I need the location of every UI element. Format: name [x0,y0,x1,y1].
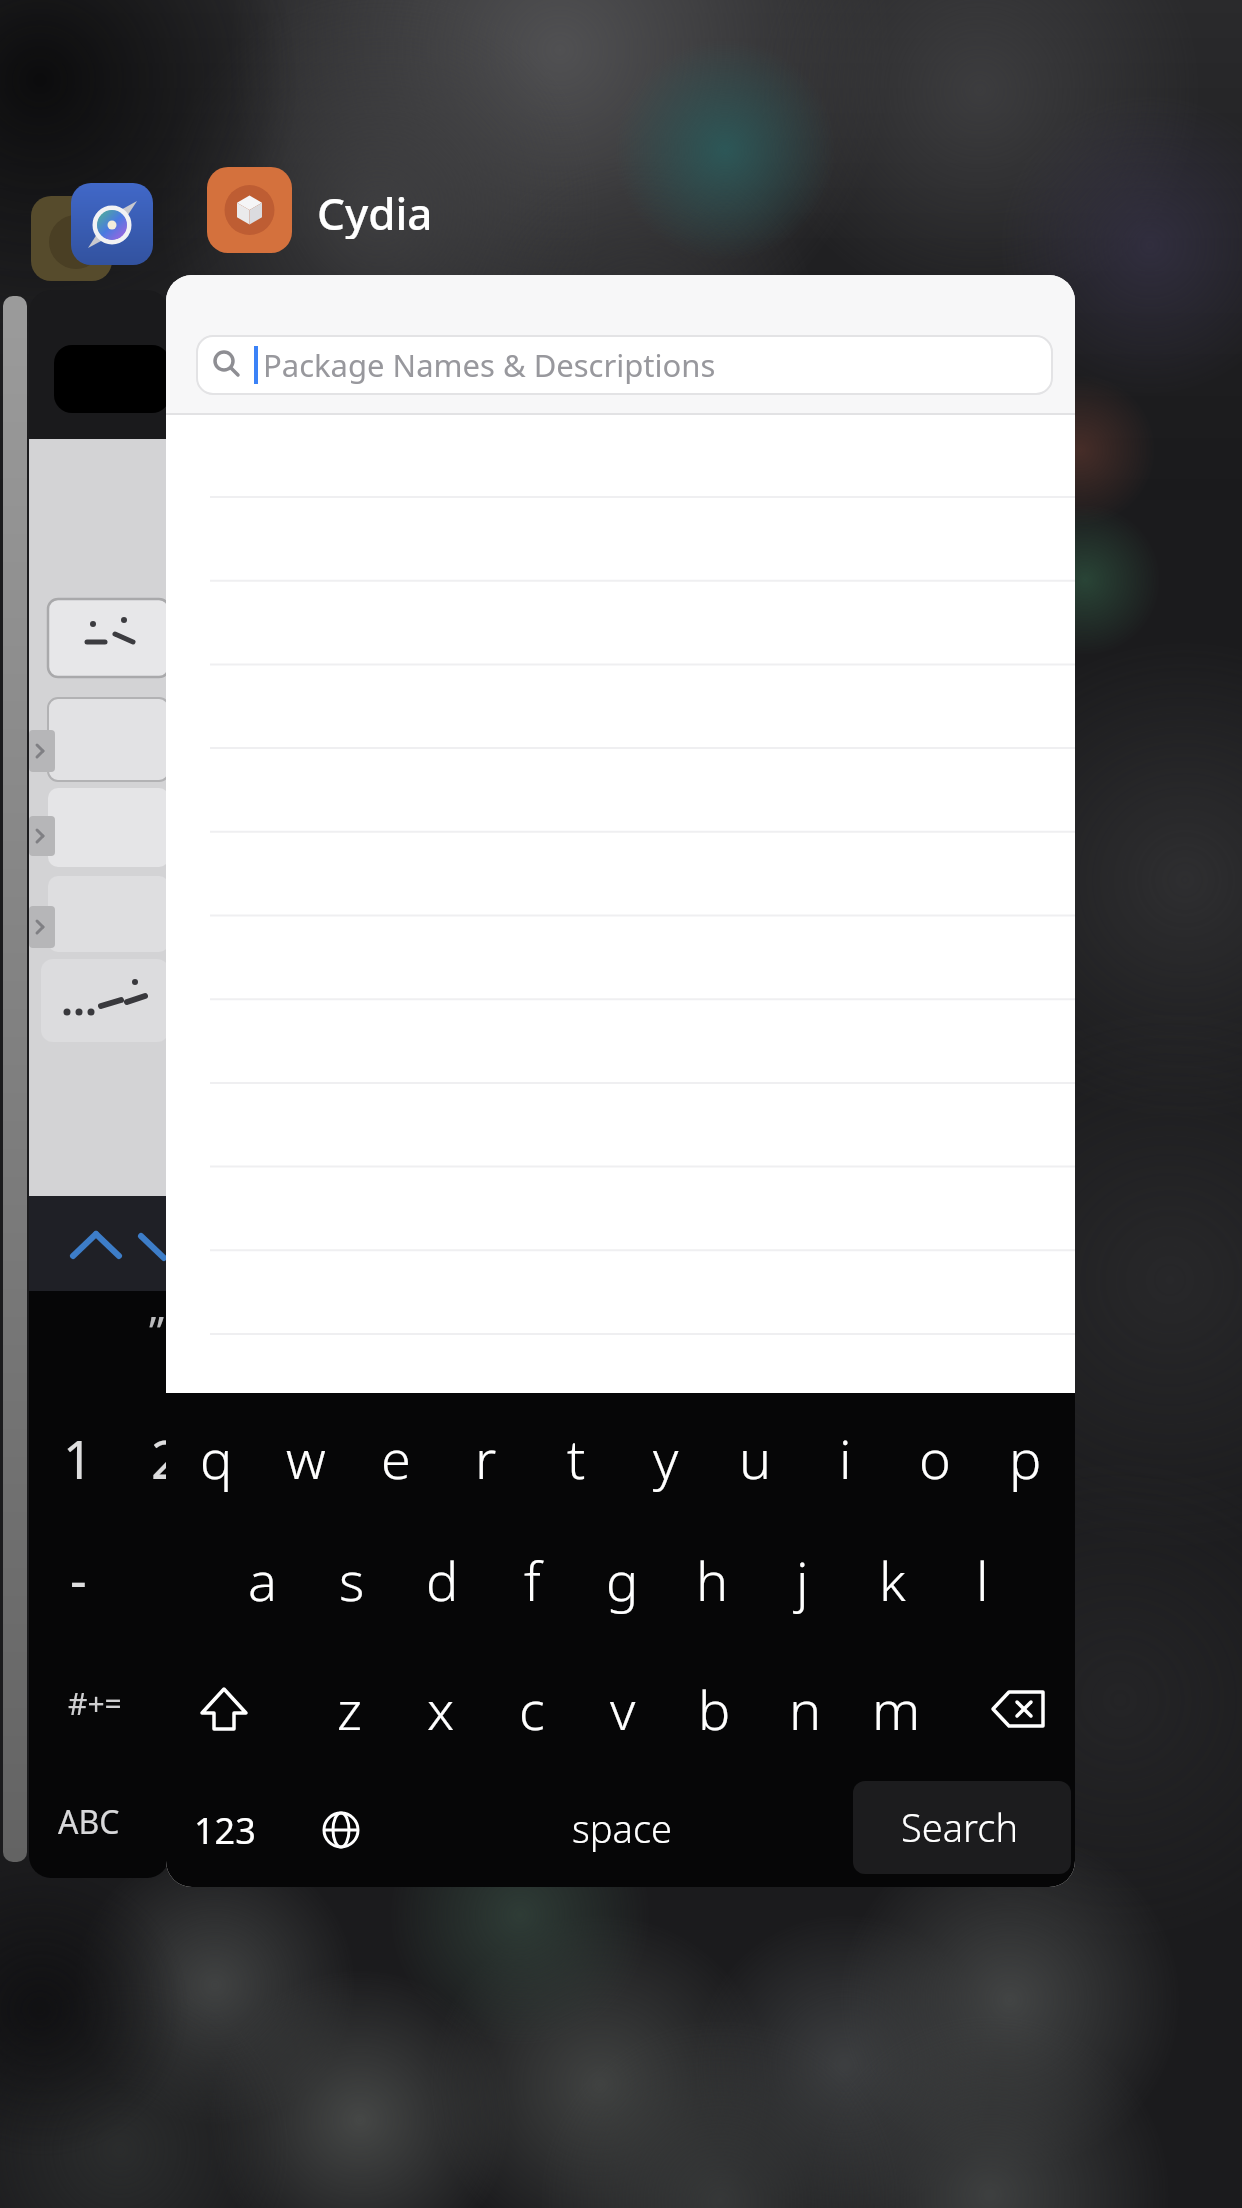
button[interactable]: d [372,1530,512,1630]
staticText: g [606,1543,639,1617]
button[interactable]: w [236,1408,376,1508]
staticText: x [427,1672,455,1746]
button[interactable]: #+= [25,1653,165,1753]
button[interactable]: m [826,1659,966,1759]
button[interactable]: t [506,1408,646,1508]
staticText: o [919,1421,951,1495]
button[interactable]: u [685,1408,825,1508]
staticText: a [248,1543,277,1617]
staticText: 123 [194,1806,256,1855]
staticText: ” [149,1302,165,1359]
button[interactable]: j [732,1530,872,1630]
staticText: Package Names & Descriptions [263,344,716,386]
staticText: p [1009,1421,1042,1495]
staticText: Cydia [317,183,433,239]
button[interactable]: 2 [151,1408,169,1508]
button[interactable]: f [462,1530,602,1630]
staticText: l [976,1543,989,1617]
button[interactable]: 123 [155,1780,295,1880]
button[interactable] [71,183,153,265]
staticText: e [381,1421,411,1495]
staticText: k [879,1543,906,1617]
staticText: u [739,1421,772,1495]
button[interactable]: Search [890,1777,1030,1877]
button[interactable] [197,336,1052,394]
staticText: t [567,1421,586,1495]
button[interactable]: l [912,1530,1052,1630]
button[interactable]: i [775,1408,915,1508]
staticText: space [572,1802,672,1854]
staticText: f [524,1543,541,1617]
button[interactable]: v [553,1659,693,1759]
staticText: n [789,1672,822,1746]
staticText: m [872,1672,921,1746]
button[interactable]: 1 [8,1408,148,1508]
button[interactable]: o [865,1408,1005,1508]
staticText: 1 [63,1423,93,1494]
staticText: - [70,1543,87,1614]
staticText: y [653,1421,679,1495]
staticText: d [426,1543,459,1617]
button[interactable]: - [8,1528,148,1628]
button[interactable]: p [955,1408,1095,1508]
button[interactable]: Cydia [317,183,447,239]
staticText: w [286,1421,326,1495]
staticText: r [475,1421,497,1495]
button[interactable]: h [642,1530,782,1630]
staticText: 2 [151,1423,169,1494]
staticText: h [696,1543,729,1617]
staticText: i [839,1421,852,1495]
staticText: z [337,1672,363,1746]
button[interactable]: s [282,1530,422,1630]
button[interactable]: x [371,1659,511,1759]
button[interactable]: ABC [19,1772,159,1872]
staticText: c [519,1672,545,1746]
staticText: j [796,1543,809,1617]
button[interactable]: q [146,1408,286,1508]
button[interactable]: b [644,1659,784,1759]
button[interactable]: y [596,1408,736,1508]
staticText: b [698,1672,731,1746]
button[interactable]: g [552,1530,692,1630]
button[interactable]: e [326,1408,466,1508]
staticText: ABC [58,1800,120,1844]
button[interactable]: k [822,1530,962,1630]
button[interactable]: r [416,1408,556,1508]
button[interactable] [853,1781,1071,1874]
button[interactable]: space [552,1778,692,1878]
button[interactable]: z [280,1659,420,1759]
button[interactable] [207,167,292,253]
staticText: Search [901,1801,1019,1853]
button[interactable] [31,196,112,281]
button[interactable]: a [192,1530,332,1630]
staticText: q [200,1421,233,1495]
staticText: s [339,1543,365,1617]
staticText: v [610,1672,636,1746]
staticText: #+= [68,1683,122,1724]
button[interactable]: n [735,1659,875,1759]
button[interactable]: c [462,1659,602,1759]
